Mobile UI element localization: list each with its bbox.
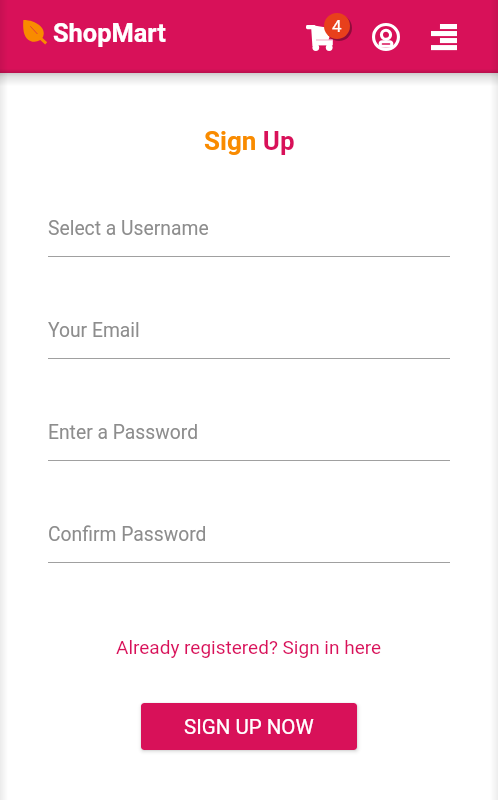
staticText: ShopMart bbox=[53, 18, 166, 48]
staticText: 4 bbox=[332, 16, 342, 36]
button[interactable]: SIGN UP NOW bbox=[141, 703, 357, 750]
button[interactable]: Shopping cart bbox=[316, 15, 360, 59]
staticText: Confirm Password bbox=[48, 523, 207, 546]
button[interactable]: Already registered? Sign in here bbox=[112, 632, 386, 662]
staticText: Sign Up bbox=[204, 126, 295, 156]
button[interactable]: Menu bbox=[431, 24, 457, 50]
staticText: SIGN UP NOW bbox=[184, 715, 314, 739]
button[interactable]: Account bbox=[372, 23, 400, 51]
staticText: Select a Username bbox=[48, 217, 209, 240]
staticText: Your Email bbox=[48, 319, 140, 342]
staticText: Enter a Password bbox=[48, 421, 199, 444]
